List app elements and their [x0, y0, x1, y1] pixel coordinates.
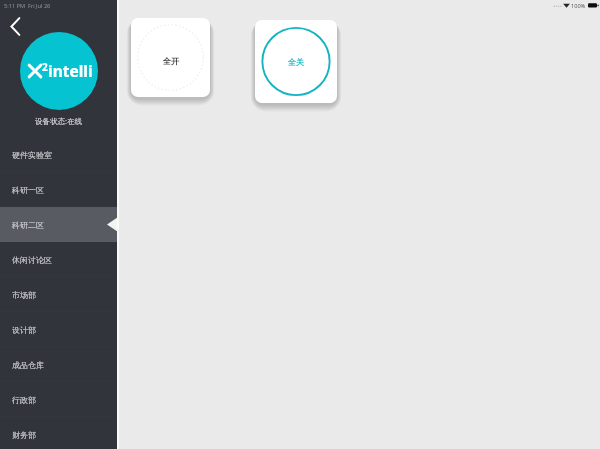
staticText: 全关 — [288, 57, 304, 67]
button[interactable]: X2intelli device — [20, 32, 98, 110]
staticText: 财务部 — [12, 430, 36, 440]
staticText: 休闲讨论区 — [12, 255, 52, 265]
staticText: 5:11 PM Fri Jul 26 — [4, 2, 51, 10]
staticText: 市场部 — [12, 290, 36, 300]
button[interactable]: 财务部 — [0, 417, 117, 449]
staticText: 科研一区 — [12, 185, 44, 195]
staticText: 设计部 — [12, 325, 36, 335]
button[interactable]: 设计部 — [0, 312, 117, 347]
staticText: 硬件实验室 — [12, 150, 52, 160]
staticText: 科研二区 — [12, 220, 44, 230]
staticText: 2 — [42, 60, 48, 74]
button[interactable]: 休闲讨论区 — [0, 242, 117, 277]
staticText: 全开 — [163, 56, 179, 66]
button[interactable]: 成品仓库 — [0, 347, 117, 382]
staticText: 成品仓库 — [12, 360, 44, 370]
button[interactable]: 全关 — [255, 20, 337, 103]
button[interactable]: 科研一区 — [0, 172, 117, 207]
button[interactable]: Back — [10, 17, 21, 36]
button[interactable]: 硬件实验室 — [0, 137, 117, 172]
staticText: 行政部 — [12, 395, 36, 405]
button[interactable]: 市场部 — [0, 277, 117, 312]
button[interactable]: 全开 — [131, 18, 210, 97]
button[interactable]: 行政部 — [0, 382, 117, 417]
staticText: 100% — [571, 2, 586, 10]
button[interactable]: 科研二区 — [0, 207, 117, 242]
staticText: intelli — [48, 60, 93, 81]
staticText: 设备状态:在线 — [0, 116, 117, 126]
